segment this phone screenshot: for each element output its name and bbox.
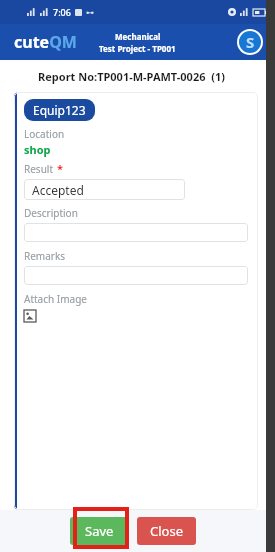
button[interactable]: Equip123 xyxy=(24,99,95,121)
staticText: Test Project - TP001 xyxy=(99,43,176,54)
staticText: Remarks xyxy=(24,249,66,263)
staticText: Attach Image xyxy=(24,292,87,306)
button[interactable]: Attach image xyxy=(24,310,36,322)
staticText: Description xyxy=(24,206,78,220)
button[interactable]: Account xyxy=(239,31,261,53)
button[interactable] xyxy=(24,266,248,285)
staticText: Result xyxy=(24,162,54,176)
staticText: * xyxy=(57,161,63,176)
button[interactable]: Save xyxy=(70,517,129,545)
button[interactable]: cuteQM xyxy=(14,31,77,53)
staticText: shop xyxy=(24,142,51,157)
button[interactable]: Close xyxy=(137,517,196,545)
staticText: Equip123 xyxy=(33,102,86,118)
staticText: Save xyxy=(85,522,114,540)
staticText: S xyxy=(246,32,255,52)
staticText: Close xyxy=(150,522,183,540)
staticText: 7:06 xyxy=(53,6,71,18)
button[interactable]: Accepted xyxy=(24,179,185,200)
staticText: Report No:TP001-M-PAMT-0026 (1) xyxy=(0,69,263,84)
staticText: Mechanical xyxy=(115,31,161,42)
staticText: Location xyxy=(24,127,65,141)
staticText: Accepted xyxy=(32,182,84,198)
button[interactable] xyxy=(24,223,248,242)
